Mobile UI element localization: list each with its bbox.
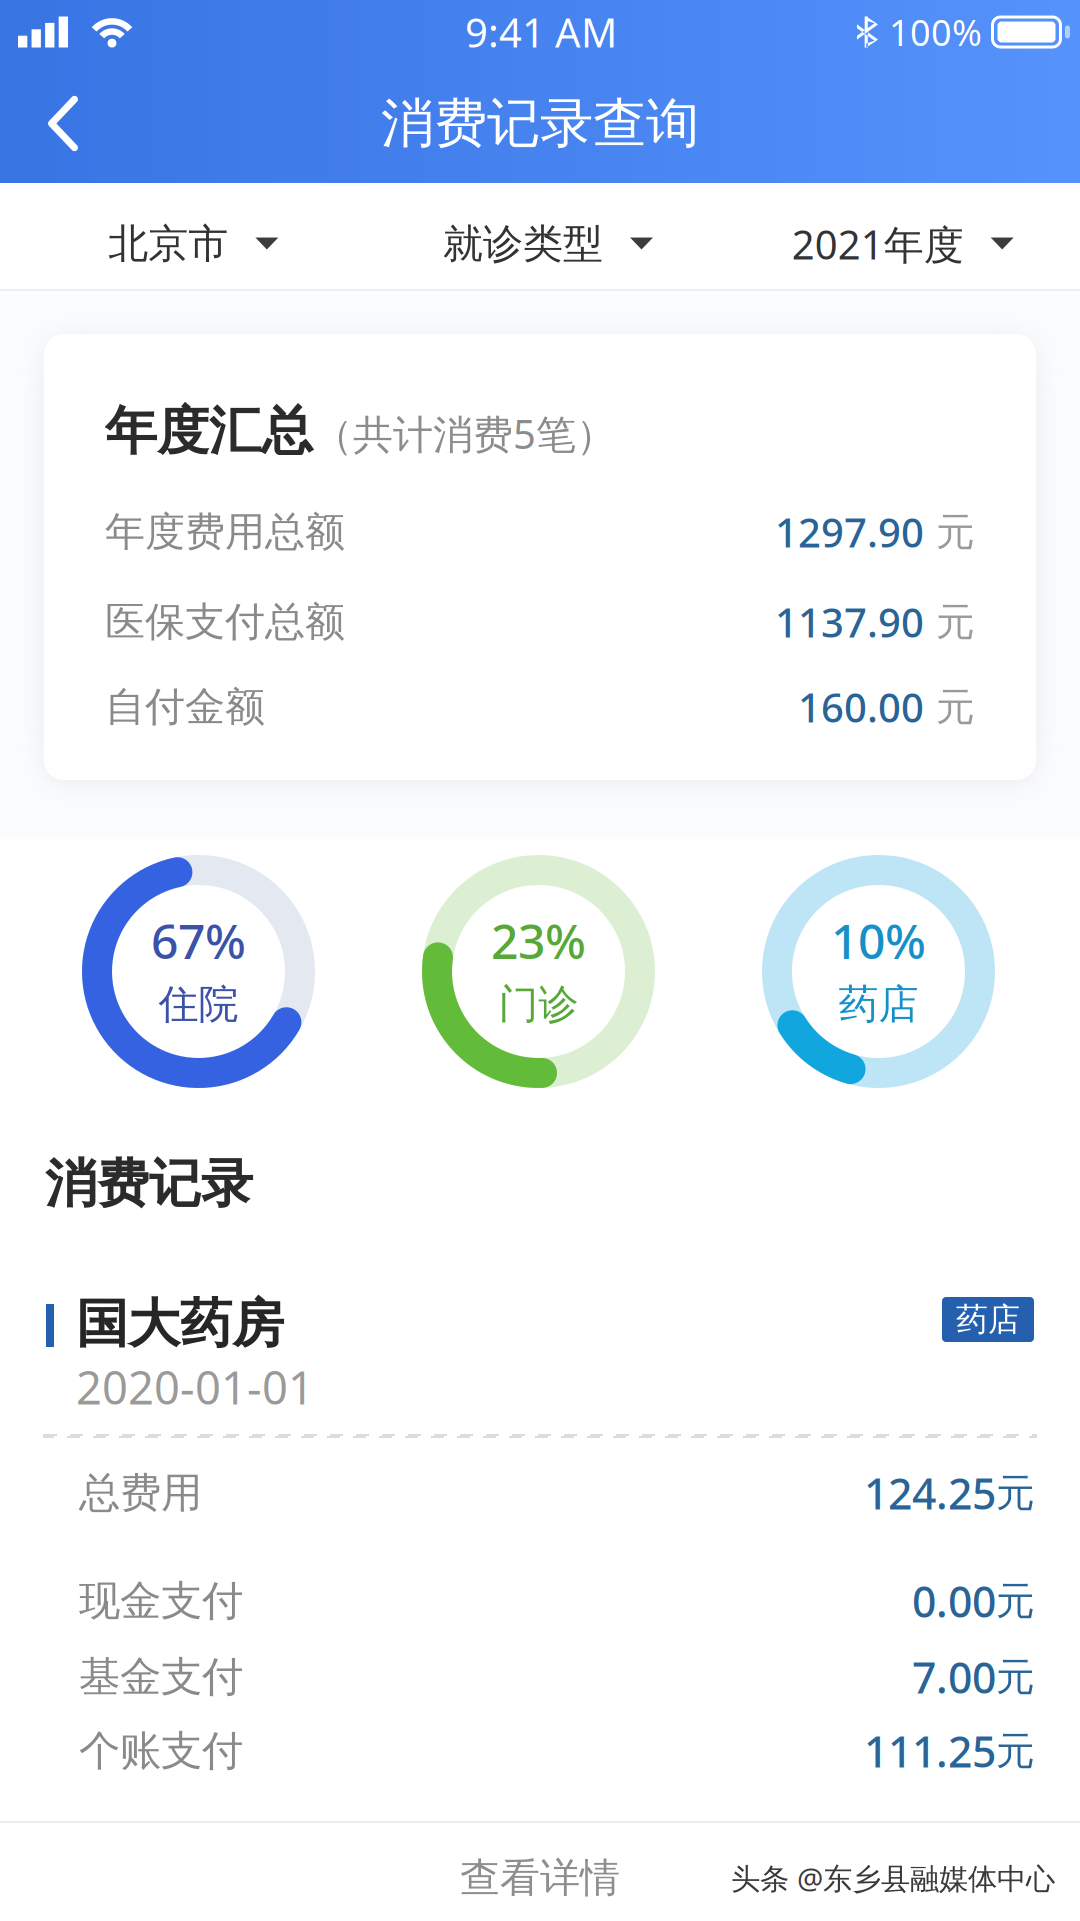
staticText: 2021年度 — [792, 217, 964, 270]
staticText: 住院 — [158, 980, 238, 1029]
staticText: 元 — [996, 1469, 1035, 1517]
staticText: 元 — [996, 1727, 1035, 1775]
staticText: 1137.90 — [775, 595, 924, 648]
staticText: 9:41 AM — [465, 5, 617, 58]
staticText: 国大药房 — [76, 1292, 284, 1356]
staticText: 现金支付 — [79, 1576, 243, 1626]
staticText: 7.00 — [912, 1649, 996, 1705]
staticText: 药店 — [838, 980, 918, 1029]
button[interactable]: 就诊类型 — [371, 183, 725, 291]
button[interactable]: 2021年度 — [725, 183, 1080, 291]
staticText: 111.25 — [864, 1723, 996, 1779]
staticText: 100% — [889, 8, 982, 56]
staticText: 1297.90 — [775, 505, 924, 558]
staticText: 160.00 — [798, 680, 924, 733]
staticText: 药店 — [956, 1300, 1020, 1339]
staticText: 年度汇总 — [105, 399, 313, 463]
staticText: 元 — [924, 598, 975, 646]
staticText: 个账支付 — [79, 1726, 243, 1776]
button[interactable]: 返回 — [0, 72, 118, 174]
staticText: 元 — [924, 508, 975, 556]
staticText: （共计消费5笔） — [313, 407, 616, 460]
button[interactable]: 查看详情 — [0, 1823, 1080, 1921]
staticText: 就诊类型 — [443, 219, 603, 268]
staticText: 2020-01-01 — [76, 1357, 314, 1417]
staticText: 基金支付 — [79, 1652, 243, 1702]
staticText: 124.25 — [864, 1465, 996, 1521]
staticText: 总费用 — [79, 1468, 202, 1518]
staticText: 头条 @东乡县融媒体中心 — [731, 1858, 1055, 1897]
staticText: 67% — [151, 909, 246, 972]
staticText: 元 — [924, 683, 975, 731]
staticText: 10% — [831, 909, 926, 972]
staticText: 元 — [996, 1653, 1035, 1701]
staticText: 北京市 — [108, 219, 228, 268]
staticText: 23% — [491, 909, 586, 972]
staticText: 门诊 — [498, 980, 578, 1029]
staticText: 消费记录 — [45, 1152, 253, 1216]
staticText: 元 — [996, 1577, 1035, 1625]
staticText: 查看详情 — [460, 1853, 620, 1902]
staticText: 年度费用总额 — [105, 507, 345, 556]
button[interactable]: 北京市 — [16, 183, 371, 291]
staticText: 自付金额 — [105, 682, 265, 731]
staticText: 0.00 — [912, 1573, 996, 1629]
staticText: 医保支付总额 — [105, 597, 345, 646]
staticText: 消费记录查询 — [381, 91, 699, 156]
